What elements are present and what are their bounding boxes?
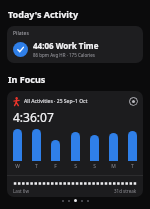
staticText: Last 6w xyxy=(13,188,29,194)
staticText: Pilates xyxy=(13,30,29,37)
staticText: W xyxy=(15,163,20,170)
staticText: In Focus xyxy=(8,73,46,85)
staticText: Today's Activity xyxy=(8,8,79,20)
button[interactable]: Pilates xyxy=(7,26,143,63)
staticText: S xyxy=(93,163,96,170)
staticText: T xyxy=(35,163,38,170)
staticText: 4:36:07 xyxy=(13,109,54,125)
staticText: S xyxy=(74,163,77,170)
staticText: 31d streak xyxy=(114,188,137,194)
button[interactable]: Options xyxy=(128,96,138,106)
staticText: F xyxy=(54,163,57,170)
staticText: 44:06 Work Time xyxy=(33,40,99,51)
staticText: 86 bpm Avg HR · 175 Calories xyxy=(33,52,95,58)
staticText: All Activities · 25 Sep–1 Oct xyxy=(24,98,128,105)
button[interactable]: All Activities · 25 Sep–1 Oct xyxy=(7,91,143,197)
staticText: T xyxy=(131,163,134,170)
staticText: M xyxy=(111,163,116,170)
